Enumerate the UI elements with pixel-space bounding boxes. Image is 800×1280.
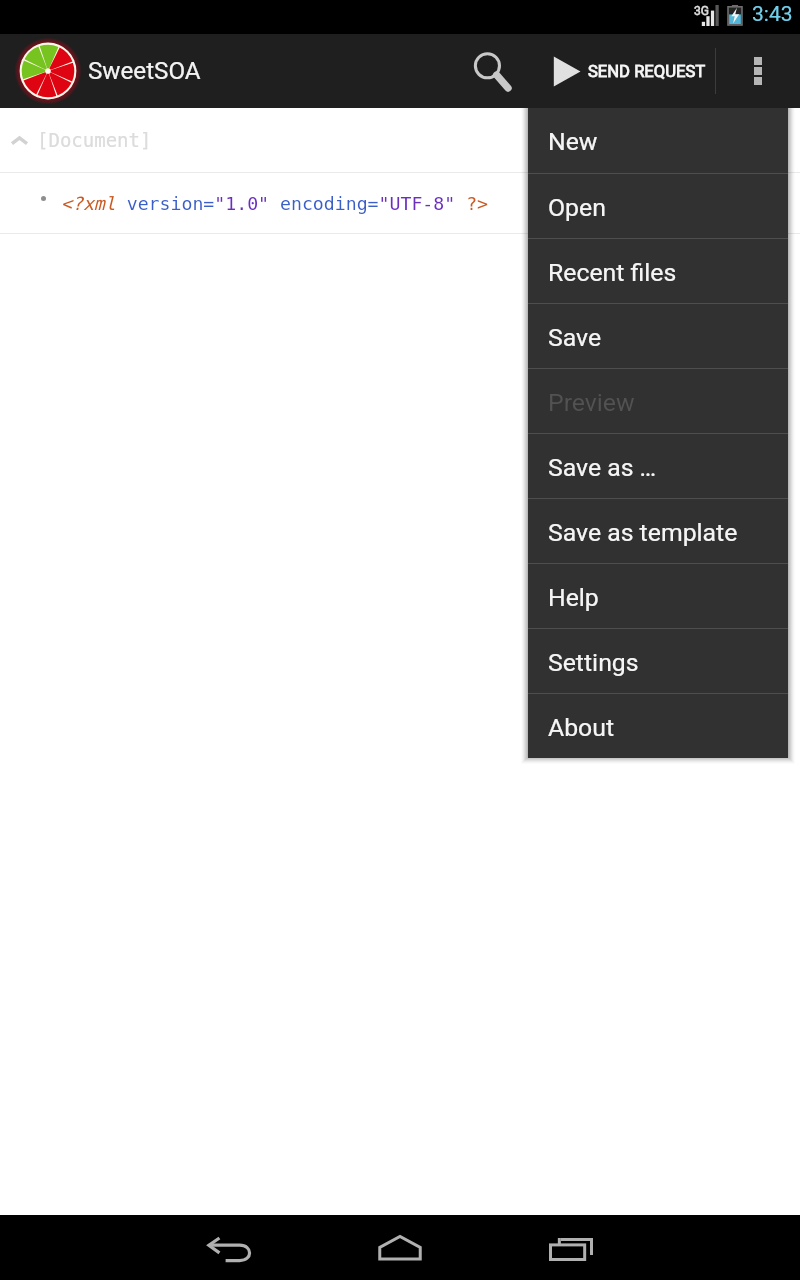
staticText: SweetSOA: [88, 57, 201, 85]
staticText: Save as template: [548, 518, 738, 547]
button[interactable]: Home: [315, 1215, 485, 1280]
staticText: Save: [548, 323, 602, 352]
button[interactable]: [Document]: [0, 108, 800, 172]
staticText: 3:43: [752, 2, 793, 27]
button[interactable]: Recent apps: [485, 1215, 655, 1280]
button[interactable]: New: [528, 108, 788, 173]
button[interactable]: Search: [452, 34, 533, 108]
staticText: Save as …: [548, 453, 657, 482]
button[interactable]: Recent files: [528, 239, 788, 303]
button[interactable]: About: [528, 694, 788, 758]
staticText: Settings: [548, 648, 639, 677]
button[interactable]: SEND REQUEST: [533, 34, 715, 108]
button[interactable]: More options: [716, 34, 800, 108]
button[interactable]: Settings: [528, 629, 788, 693]
staticText: About: [548, 713, 615, 742]
staticText: Preview: [548, 388, 635, 417]
staticText: New: [548, 127, 598, 156]
button[interactable]: Back: [145, 1215, 315, 1280]
button[interactable]: Save: [528, 304, 788, 368]
button[interactable]: Preview: [528, 369, 788, 433]
staticText: Help: [548, 583, 599, 612]
button[interactable]: Save as …: [528, 434, 788, 498]
staticText: <?xml version="1.0" encoding="UTF-8" ?>: [61, 193, 489, 214]
staticText: Open: [548, 193, 606, 222]
staticText: Recent files: [548, 258, 677, 287]
button[interactable]: Open: [528, 174, 788, 238]
staticText: SEND REQUEST: [588, 62, 706, 81]
staticText: [Document]: [37, 129, 152, 151]
staticText: 3G: [694, 4, 709, 18]
button[interactable]: Help: [528, 564, 788, 628]
button[interactable]: <?xml version="1.0" encoding="UTF-8" ?>: [0, 173, 800, 233]
button[interactable]: Save as template: [528, 499, 788, 563]
